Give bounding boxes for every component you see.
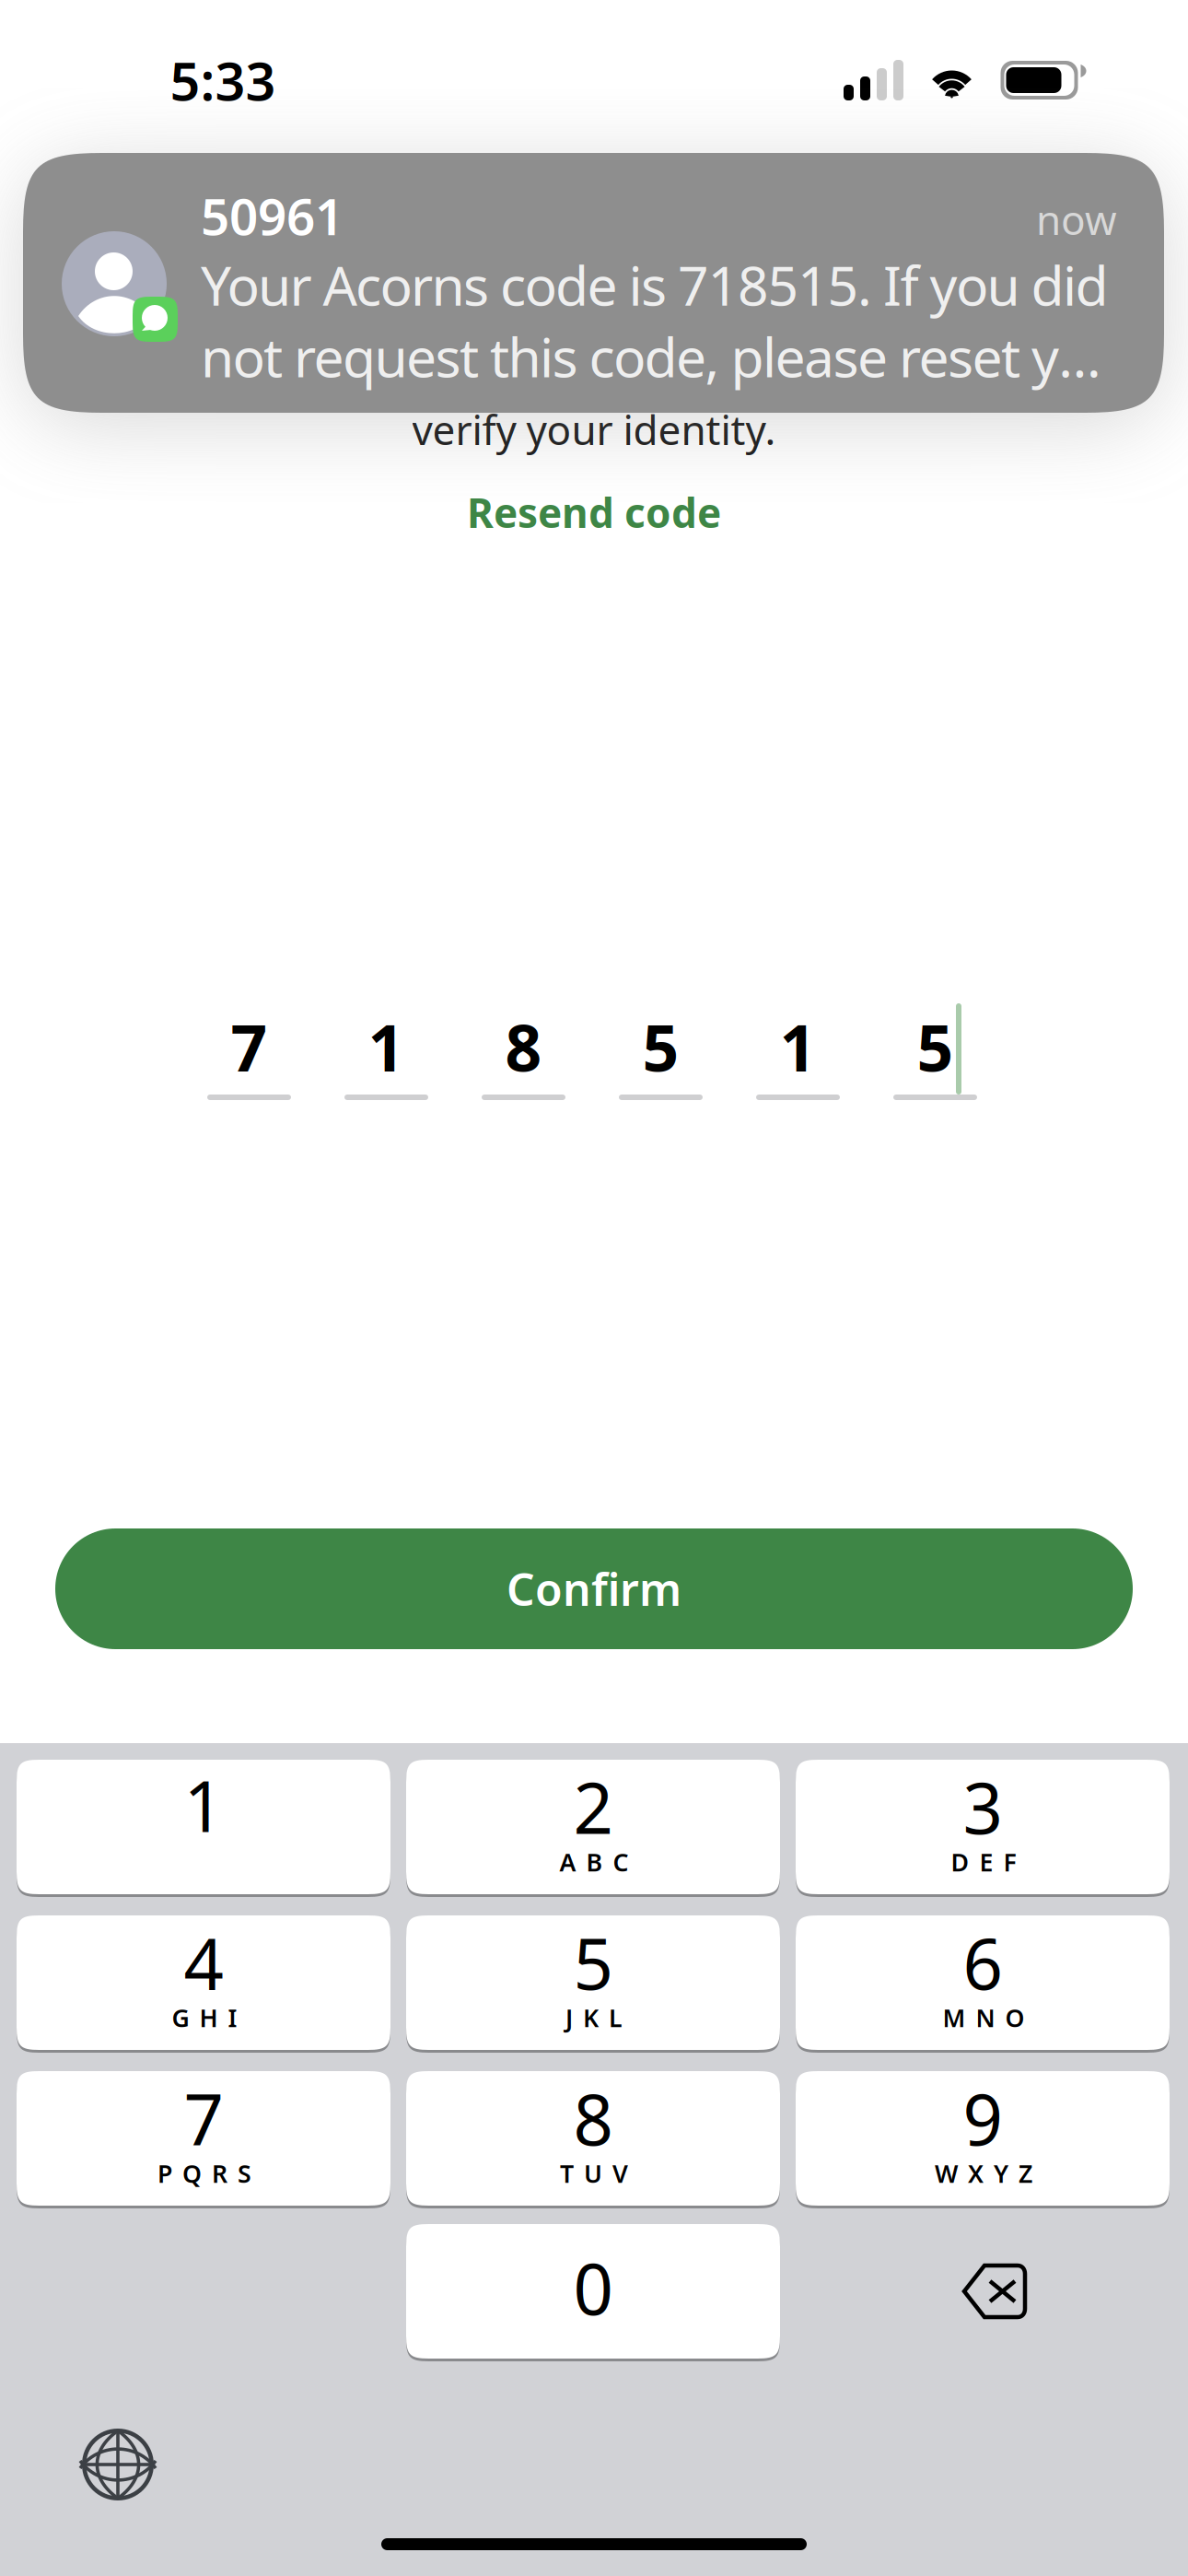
staticText: D E F [951,1846,1016,1878]
staticText: 1 [368,1004,405,1089]
button[interactable]: Switch keyboard [53,2409,182,2520]
button[interactable]: 0 [406,2224,780,2361]
button[interactable]: 9 [796,2071,1170,2208]
staticText: 1 [184,1758,223,1851]
staticText: Confirm [507,1559,681,1618]
button[interactable]: 7 [17,2071,390,2208]
button[interactable]: Verification code 718515 [207,1003,978,1100]
staticText: 50961 [201,182,344,249]
staticText: Your Acorns code is 718515. If you did n… [201,249,1123,392]
button[interactable]: 2 [406,1760,780,1897]
staticText: Resend code [467,485,721,539]
button[interactable]: 6 [796,1915,1170,2053]
staticText: 2 [573,1760,613,1853]
staticText: 1 [780,1004,816,1089]
staticText: verify your identity. [412,402,776,456]
staticText: 5:33 [170,45,276,115]
button[interactable]: 4 [17,1915,390,2053]
button[interactable]: 5 [406,1915,780,2053]
staticText: 7 [231,1004,268,1089]
button[interactable]: 50961 [23,153,1164,413]
staticText: J K L [565,2001,623,2034]
staticText: T U V [560,2157,628,2190]
button[interactable]: 8 [406,2071,780,2208]
staticText: 6 [963,1916,1002,2009]
button[interactable]: Resend code [0,484,1188,541]
staticText: 4 [184,1916,223,2009]
button[interactable]: 3 [796,1760,1170,1897]
staticText: 8 [505,1004,542,1089]
staticText: 9 [963,2072,1002,2165]
staticText: A B C [559,1846,629,1878]
staticText: now [1036,192,1117,246]
button[interactable]: Delete [796,2224,1170,2359]
staticText: 3 [963,1760,1002,1853]
staticText: M N O [943,2001,1025,2034]
staticText: 0 [573,2241,613,2334]
staticText: 8 [573,2072,613,2165]
staticText: W X Y Z [935,2157,1032,2190]
staticText: 5 [573,1916,613,2009]
staticText: 5 [642,1004,679,1089]
button[interactable]: 1 [17,1760,390,1897]
staticText: 5 [917,1004,954,1089]
staticText: G H I [172,2001,237,2034]
staticText: P Q R S [157,2157,251,2190]
staticText: 7 [184,2072,223,2165]
button[interactable]: Confirm [55,1528,1133,1649]
